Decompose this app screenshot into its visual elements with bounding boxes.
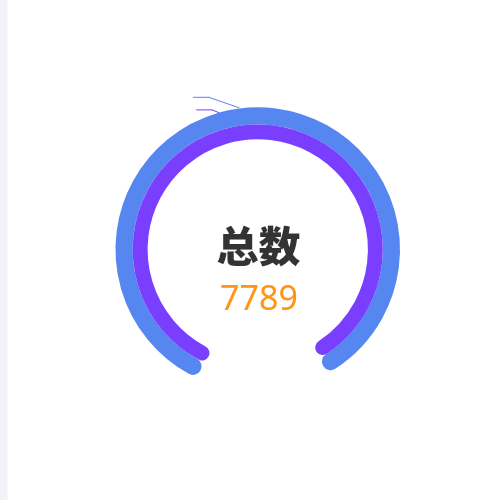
button[interactable]: Total donut chart <box>0 0 500 500</box>
staticText: 总数 <box>216 213 301 274</box>
staticText: 7789 <box>220 274 298 320</box>
